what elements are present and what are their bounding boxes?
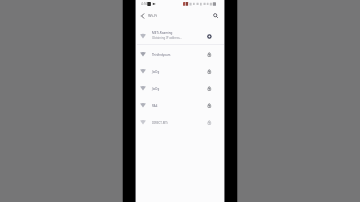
button[interactable]: [136, 63, 224, 80]
button[interactable]: [136, 28, 224, 44]
staticText: Wi-Fi: [148, 13, 158, 19]
button[interactable]: [138, 10, 158, 22]
staticText: DIRECT-MTi: [152, 121, 168, 125]
staticText: Obtaining IP address...: [152, 36, 182, 40]
button[interactable]: [136, 46, 224, 63]
button[interactable]: [136, 97, 224, 114]
staticText: Thisfindyours: [152, 53, 171, 57]
staticText: JioDg: [152, 70, 160, 74]
button[interactable]: [136, 80, 224, 97]
staticText: 4:56: [141, 2, 148, 6]
staticText: JioDg: [152, 87, 160, 91]
button[interactable]: [136, 114, 224, 131]
button[interactable]: [211, 11, 221, 21]
staticText: RA4: [152, 104, 158, 108]
staticText: METi-Roaming: [152, 31, 173, 35]
